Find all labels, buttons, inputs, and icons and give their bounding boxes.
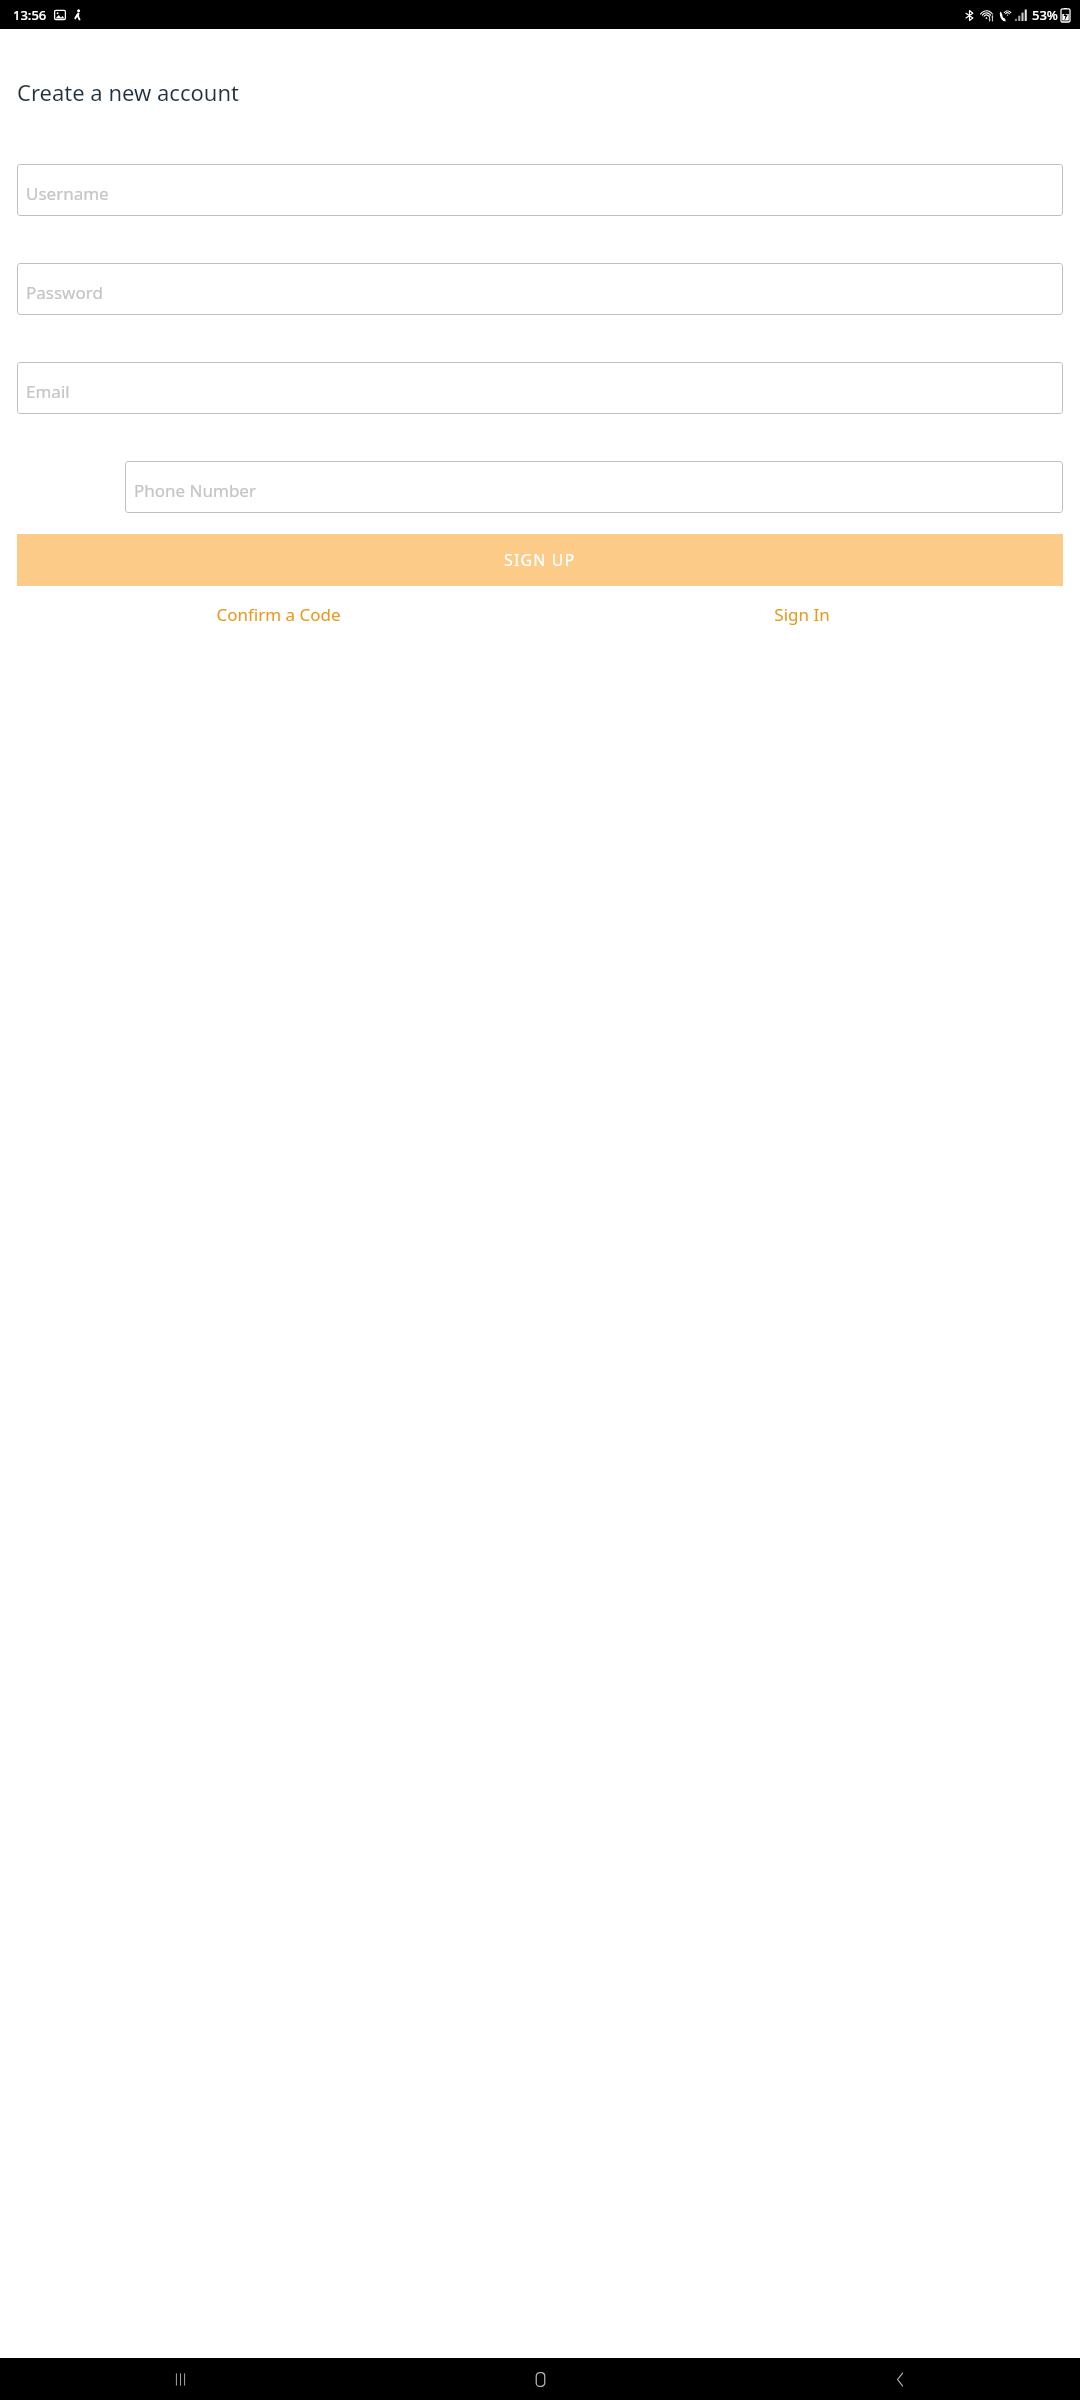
staticText: Username [26, 182, 109, 205]
staticText: Password [26, 281, 103, 304]
staticText: Email [26, 380, 70, 403]
staticText: Create a new account [17, 77, 239, 107]
button[interactable]: Password [17, 263, 1063, 315]
button[interactable]: Confirm a Code [17, 603, 540, 626]
button[interactable]: SIGN UP [17, 534, 1063, 586]
button[interactable]: Home [360, 2358, 720, 2400]
staticText: Phone Number [134, 479, 256, 502]
button[interactable]: Phone Number [125, 461, 1063, 513]
button[interactable]: Email [17, 362, 1063, 414]
staticText: 53% [1032, 6, 1058, 24]
staticText: SIGN UP [504, 549, 576, 571]
button[interactable]: Back [720, 2358, 1080, 2400]
button[interactable]: Recents [0, 2358, 360, 2400]
staticText: Confirm a Code [216, 603, 341, 626]
staticText: 13:56 [13, 6, 47, 24]
button[interactable]: Sign In [540, 603, 1063, 626]
button[interactable]: Username [17, 164, 1063, 216]
staticText: Sign In [774, 603, 830, 626]
